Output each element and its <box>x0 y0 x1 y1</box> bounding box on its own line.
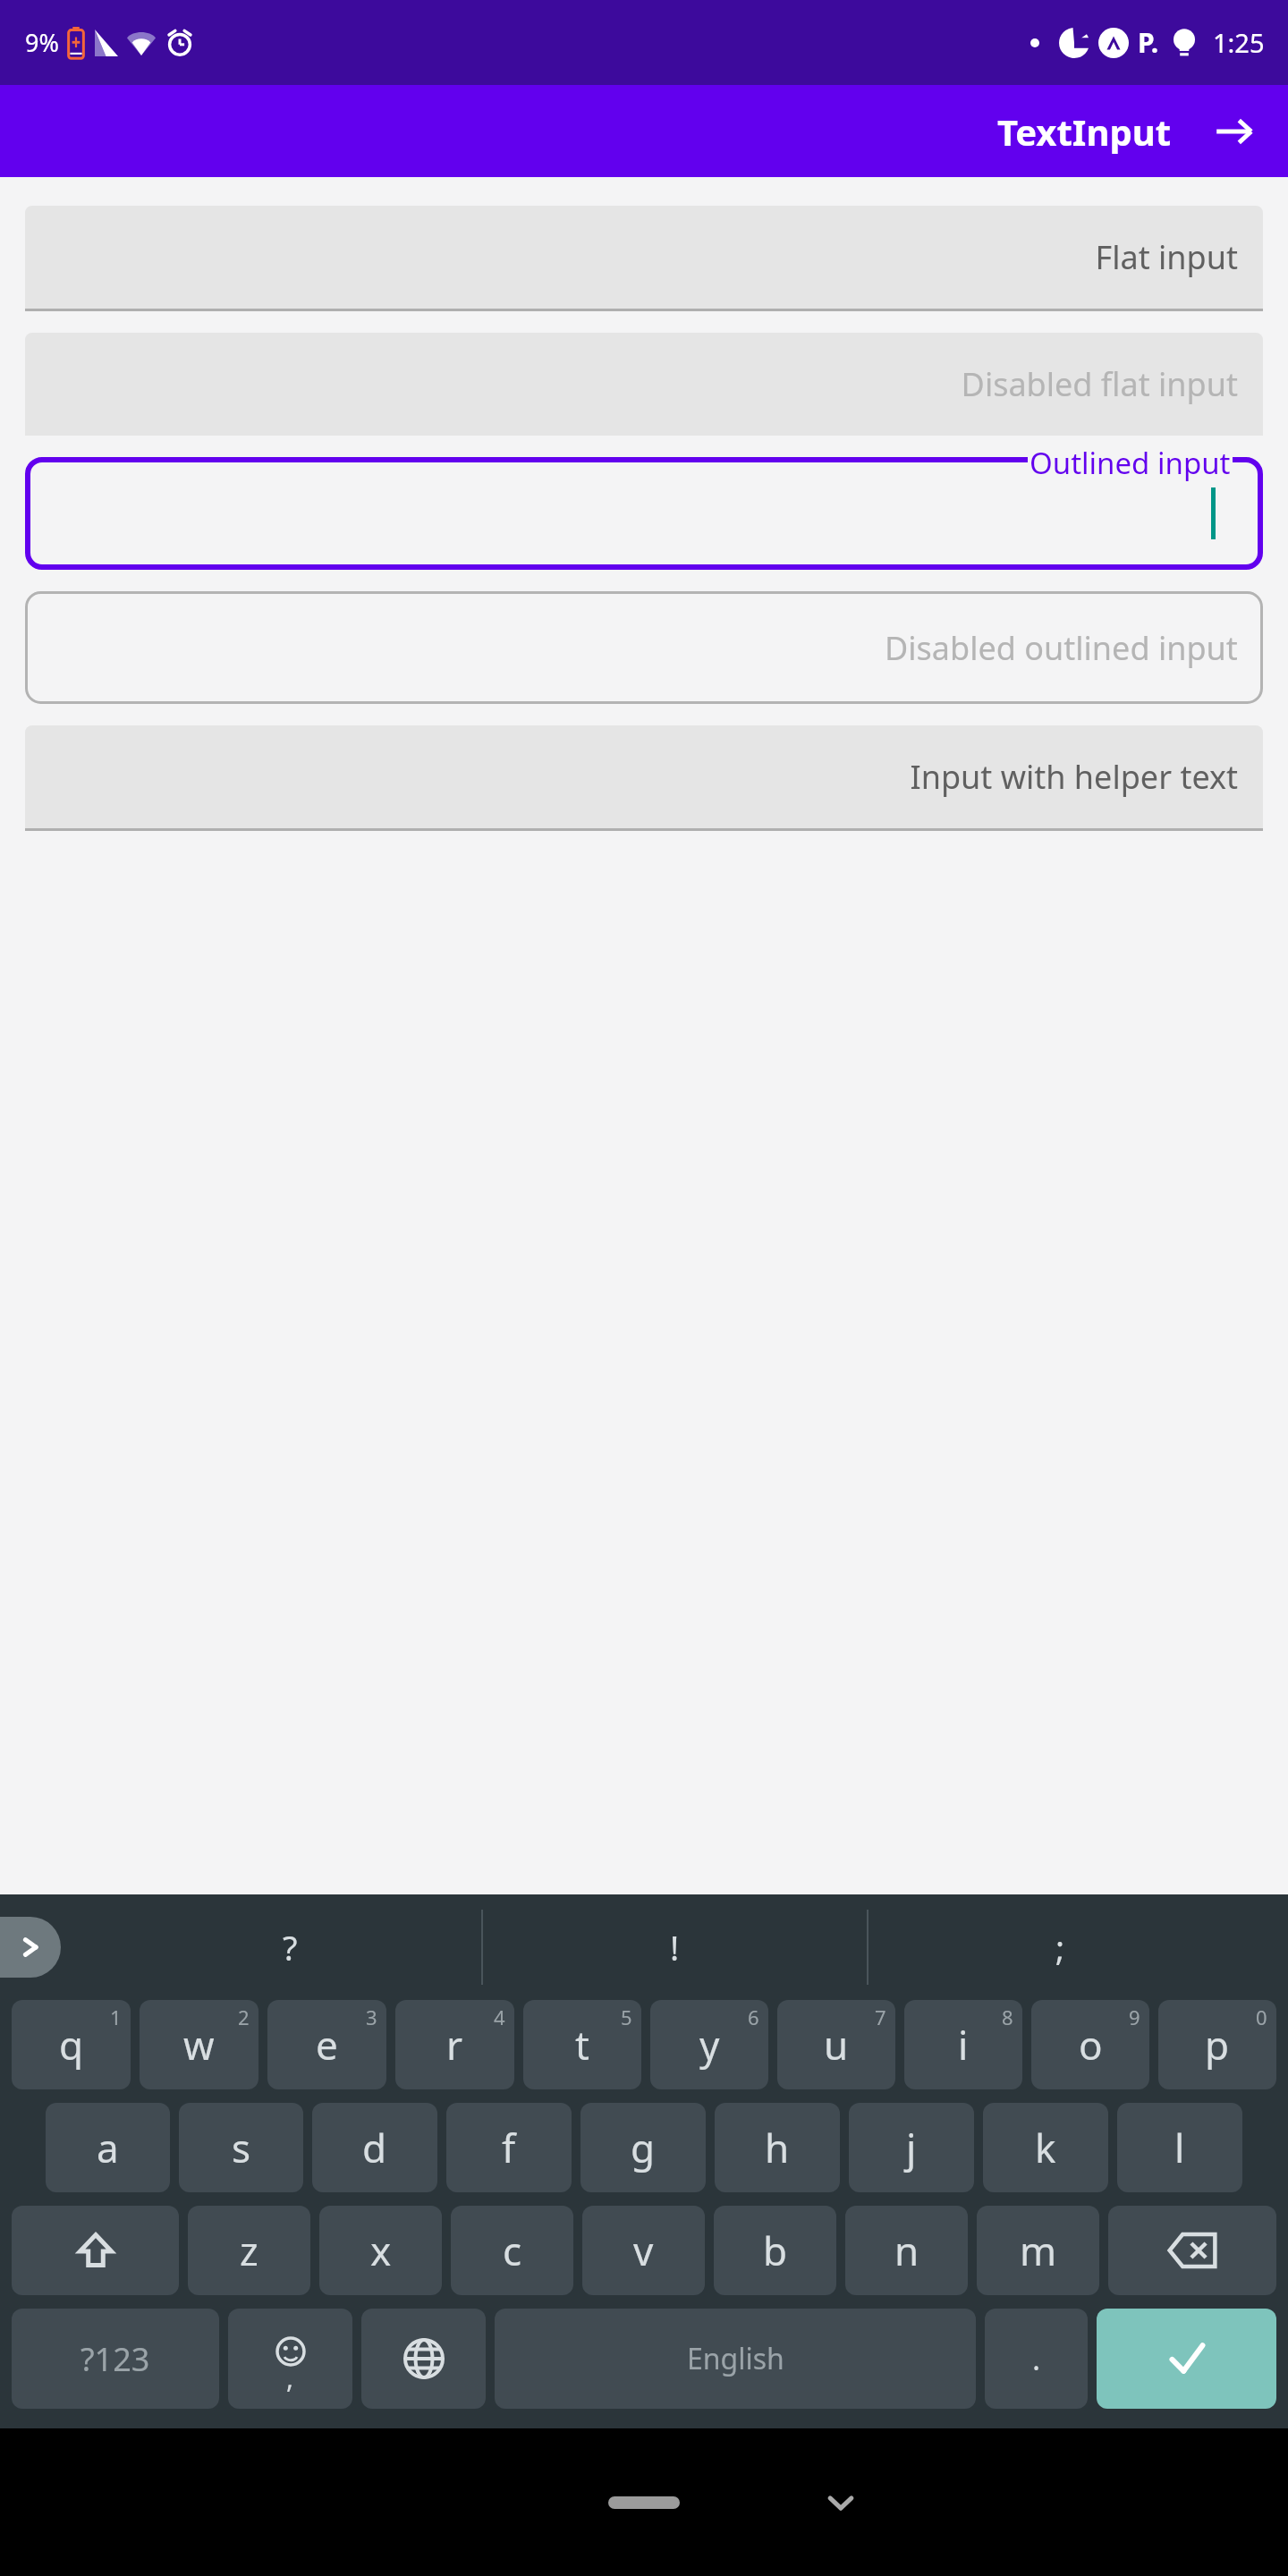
staticText: x <box>370 2224 392 2277</box>
staticText: m <box>1020 2224 1057 2277</box>
button[interactable]: . <box>985 2309 1088 2409</box>
button[interactable]: v <box>582 2206 705 2295</box>
staticText: Flat input <box>1095 235 1238 279</box>
staticText: 9% <box>25 26 59 59</box>
button[interactable]: y <box>650 2000 768 2089</box>
staticText: ; <box>1055 1924 1065 1970</box>
button[interactable]: n <box>845 2206 968 2295</box>
staticText: 5 <box>621 2004 632 2030</box>
staticText: v <box>633 2224 654 2277</box>
staticText: t <box>575 2018 589 2072</box>
button[interactable]: Flat input <box>25 206 1263 311</box>
button[interactable]: h <box>715 2103 840 2192</box>
staticText: l <box>1174 2121 1185 2174</box>
staticText: i <box>958 2018 969 2072</box>
staticText: w <box>183 2018 215 2072</box>
staticText: . <box>1032 2338 1041 2379</box>
staticText: ?123 <box>80 2337 150 2381</box>
staticText: 8 <box>1002 2004 1013 2030</box>
staticText: , <box>286 2360 294 2396</box>
button[interactable]: Disabled outlined input <box>25 591 1263 704</box>
button[interactable]: x <box>319 2206 442 2295</box>
button[interactable]: ; <box>869 1894 1252 2000</box>
button[interactable]: e <box>267 2000 386 2089</box>
button[interactable]: Expand toolbar <box>0 1917 61 1978</box>
button[interactable]: Emoji <box>228 2309 352 2409</box>
button[interactable]: t <box>523 2000 641 2089</box>
button[interactable]: p <box>1158 2000 1276 2089</box>
button[interactable]: Outlined input <box>25 457 1263 570</box>
staticText: g <box>631 2121 656 2174</box>
button[interactable]: d <box>312 2103 437 2192</box>
staticText: y <box>699 2018 720 2072</box>
button[interactable]: f <box>446 2103 572 2192</box>
staticText: c <box>503 2224 522 2277</box>
button[interactable]: k <box>983 2103 1108 2192</box>
button[interactable]: Home <box>608 2496 680 2509</box>
staticText: ! <box>670 1924 680 1970</box>
staticText: z <box>240 2224 258 2277</box>
button[interactable]: Hide keyboard <box>809 2471 872 2534</box>
button[interactable]: z <box>188 2206 310 2295</box>
button[interactable]: Change language <box>361 2309 486 2409</box>
button[interactable]: ?123 <box>12 2309 219 2409</box>
staticText: d <box>362 2121 387 2174</box>
staticText: 2 <box>238 2004 250 2030</box>
staticText: u <box>824 2018 849 2072</box>
staticText: 6 <box>748 2004 759 2030</box>
staticText: 9 <box>1129 2004 1140 2030</box>
staticText: b <box>763 2224 788 2277</box>
staticText: j <box>906 2121 917 2174</box>
button[interactable]: c <box>451 2206 573 2295</box>
staticText: TextInput <box>997 107 1172 156</box>
button[interactable]: o <box>1031 2000 1149 2089</box>
button[interactable]: g <box>580 2103 706 2192</box>
staticText: ? <box>283 1924 298 1970</box>
staticText: q <box>59 2018 84 2072</box>
staticText: Disabled outlined input <box>885 626 1238 670</box>
button[interactable]: Input with helper text <box>25 725 1263 831</box>
staticText: r <box>446 2018 463 2072</box>
button[interactable]: j <box>849 2103 974 2192</box>
button[interactable]: Enter <box>1097 2309 1276 2409</box>
button[interactable]: u <box>777 2000 895 2089</box>
staticText: Input with helper text <box>910 755 1238 799</box>
button[interactable]: s <box>179 2103 303 2192</box>
staticText: p <box>1205 2018 1230 2072</box>
staticText: 1 <box>110 2004 122 2030</box>
staticText: f <box>502 2121 516 2174</box>
button[interactable]: English <box>495 2309 976 2409</box>
staticText: 3 <box>366 2004 377 2030</box>
button[interactable]: a <box>46 2103 170 2192</box>
staticText: e <box>316 2018 338 2072</box>
button[interactable]: b <box>714 2206 836 2295</box>
staticText: 0 <box>1256 2004 1267 2030</box>
button[interactable]: ? <box>98 1894 481 2000</box>
staticText: h <box>765 2121 790 2174</box>
button[interactable]: Disabled flat input <box>25 333 1263 436</box>
button[interactable]: w <box>140 2000 258 2089</box>
button[interactable]: Shift <box>12 2206 179 2295</box>
staticText: Outlined input <box>1030 443 1231 483</box>
staticText: a <box>97 2121 119 2174</box>
button[interactable]: r <box>395 2000 514 2089</box>
staticText: n <box>894 2224 919 2277</box>
button[interactable]: ! <box>483 1894 867 2000</box>
staticText: 4 <box>494 2004 505 2030</box>
button[interactable]: Next <box>1206 103 1263 160</box>
staticText: k <box>1035 2121 1056 2174</box>
staticText: P. <box>1138 24 1159 61</box>
staticText: English <box>687 2339 784 2378</box>
button[interactable]: q <box>12 2000 131 2089</box>
staticText: Disabled flat input <box>961 362 1238 406</box>
staticText: 7 <box>875 2004 886 2030</box>
button[interactable]: l <box>1117 2103 1242 2192</box>
button[interactable]: m <box>977 2206 1099 2295</box>
staticText: o <box>1079 2018 1103 2072</box>
staticText: s <box>232 2121 251 2174</box>
button[interactable]: i <box>904 2000 1022 2089</box>
staticText: 1:25 <box>1213 25 1265 60</box>
button[interactable]: Backspace <box>1108 2206 1276 2295</box>
